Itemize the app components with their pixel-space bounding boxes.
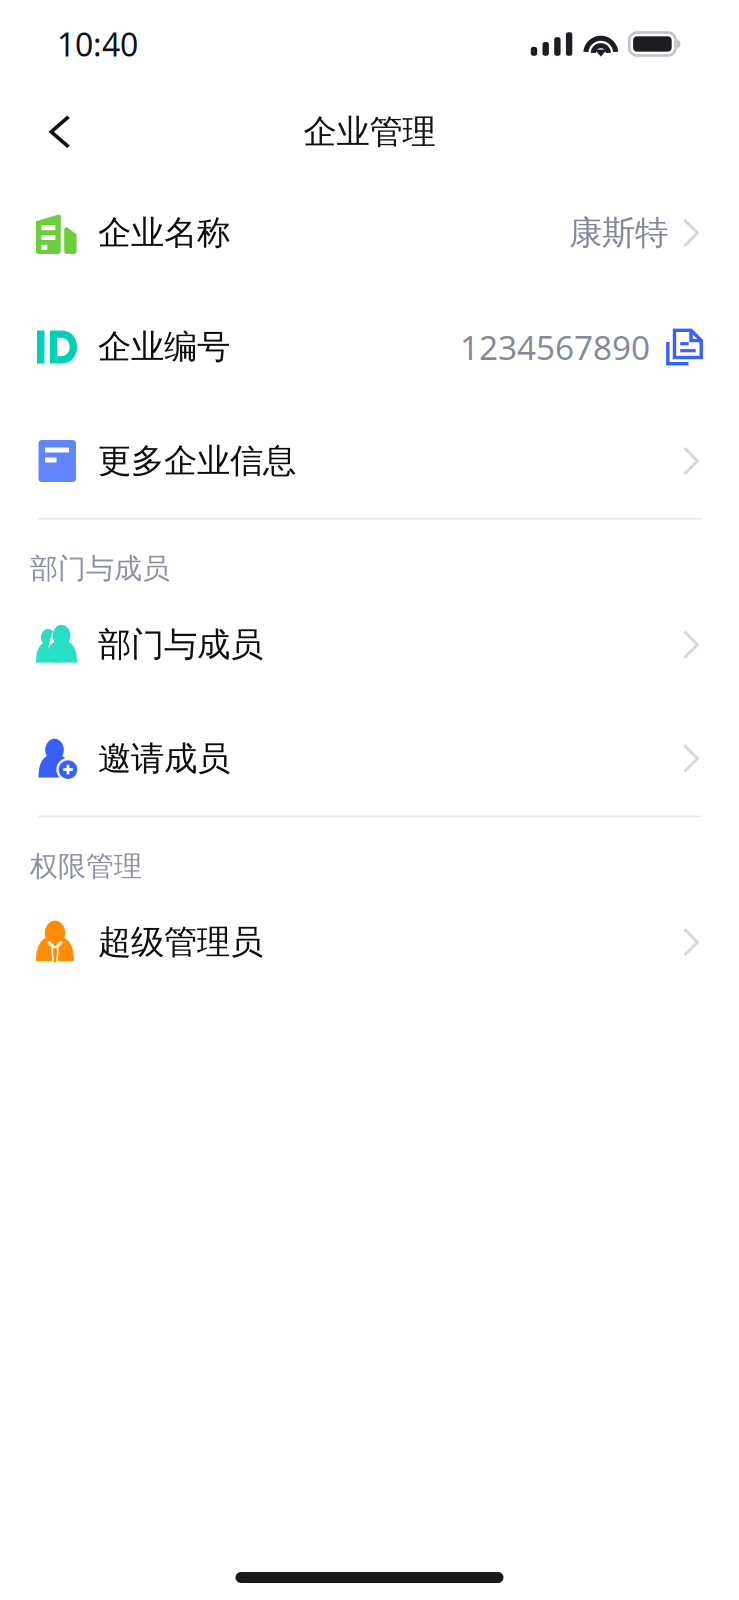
staticText: 超级管理员 [98, 922, 263, 963]
button[interactable]: 超级管理员 [0, 885, 739, 999]
staticText: 部门与成员 [98, 624, 263, 665]
button[interactable]: 更多企业信息 [0, 404, 739, 518]
staticText: 企业名称 [98, 212, 230, 253]
staticText: 10:40 [57, 23, 138, 65]
staticText: 部门与成员 [30, 552, 170, 586]
button[interactable]: 企业名称 [0, 176, 739, 290]
staticText: 更多企业信息 [98, 440, 296, 481]
button[interactable]: 邀请成员 [0, 702, 739, 816]
staticText: 邀请成员 [98, 738, 230, 779]
staticText: 1234567890 [460, 325, 650, 369]
staticText: 企业编号 [98, 326, 230, 367]
staticText: 康斯特 [569, 212, 668, 253]
button[interactable]: 部门与成员 [0, 588, 739, 702]
button[interactable]: 企业编号 [0, 290, 739, 404]
staticText: 权限管理 [30, 849, 142, 884]
button[interactable]: 返回 [0, 88, 98, 176]
staticText: 企业管理 [303, 111, 435, 152]
